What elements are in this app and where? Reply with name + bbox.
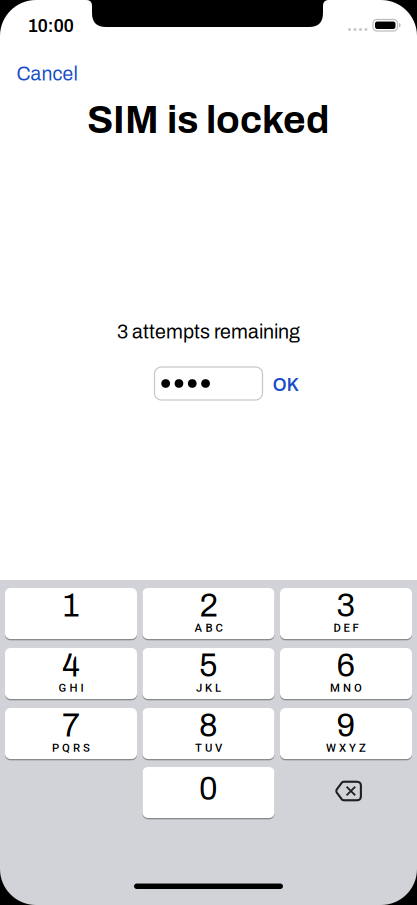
staticText: A B C [194,621,222,634]
staticText: 6 [336,648,355,683]
staticText: 9 [336,708,355,743]
staticText: G H I [58,681,83,694]
button[interactable]: 2 [142,588,274,639]
staticText: 3 [336,588,355,623]
button[interactable]: 0 [142,767,274,818]
staticText: SIM is locked [87,99,330,141]
staticText: 0 [199,771,218,807]
staticText: OK [273,375,299,394]
staticText: 2 [199,588,217,623]
staticText: 8 [199,708,218,743]
staticText: D E F [333,621,358,634]
button[interactable]: Cancel [16,64,77,84]
staticText: 10:00 [27,16,73,36]
button[interactable]: OK [273,375,299,395]
button[interactable]: PIN entry field [154,367,262,400]
button[interactable]: 7 [5,708,137,759]
button[interactable]: 4 [5,648,137,699]
button[interactable]: 8 [142,708,274,759]
staticText: T U V [195,741,222,754]
staticText: 1 [62,588,79,623]
button[interactable]: 6 [280,648,412,699]
staticText: J K L [196,681,221,694]
button[interactable]: 1 [5,588,137,639]
staticText: 4 [62,648,80,683]
staticText: M N O [330,681,362,694]
staticText: 5 [199,648,218,683]
button[interactable]: 5 [142,648,274,699]
staticText: P Q R S [52,741,90,754]
staticText: Cancel [16,63,77,84]
button[interactable]: 3 [280,588,412,639]
button[interactable]: Delete [280,767,412,818]
staticText: 7 [62,708,80,743]
staticText: 3 attempts remaining [117,321,300,343]
staticText: W X Y Z [326,741,366,754]
button[interactable]: 9 [280,708,412,759]
